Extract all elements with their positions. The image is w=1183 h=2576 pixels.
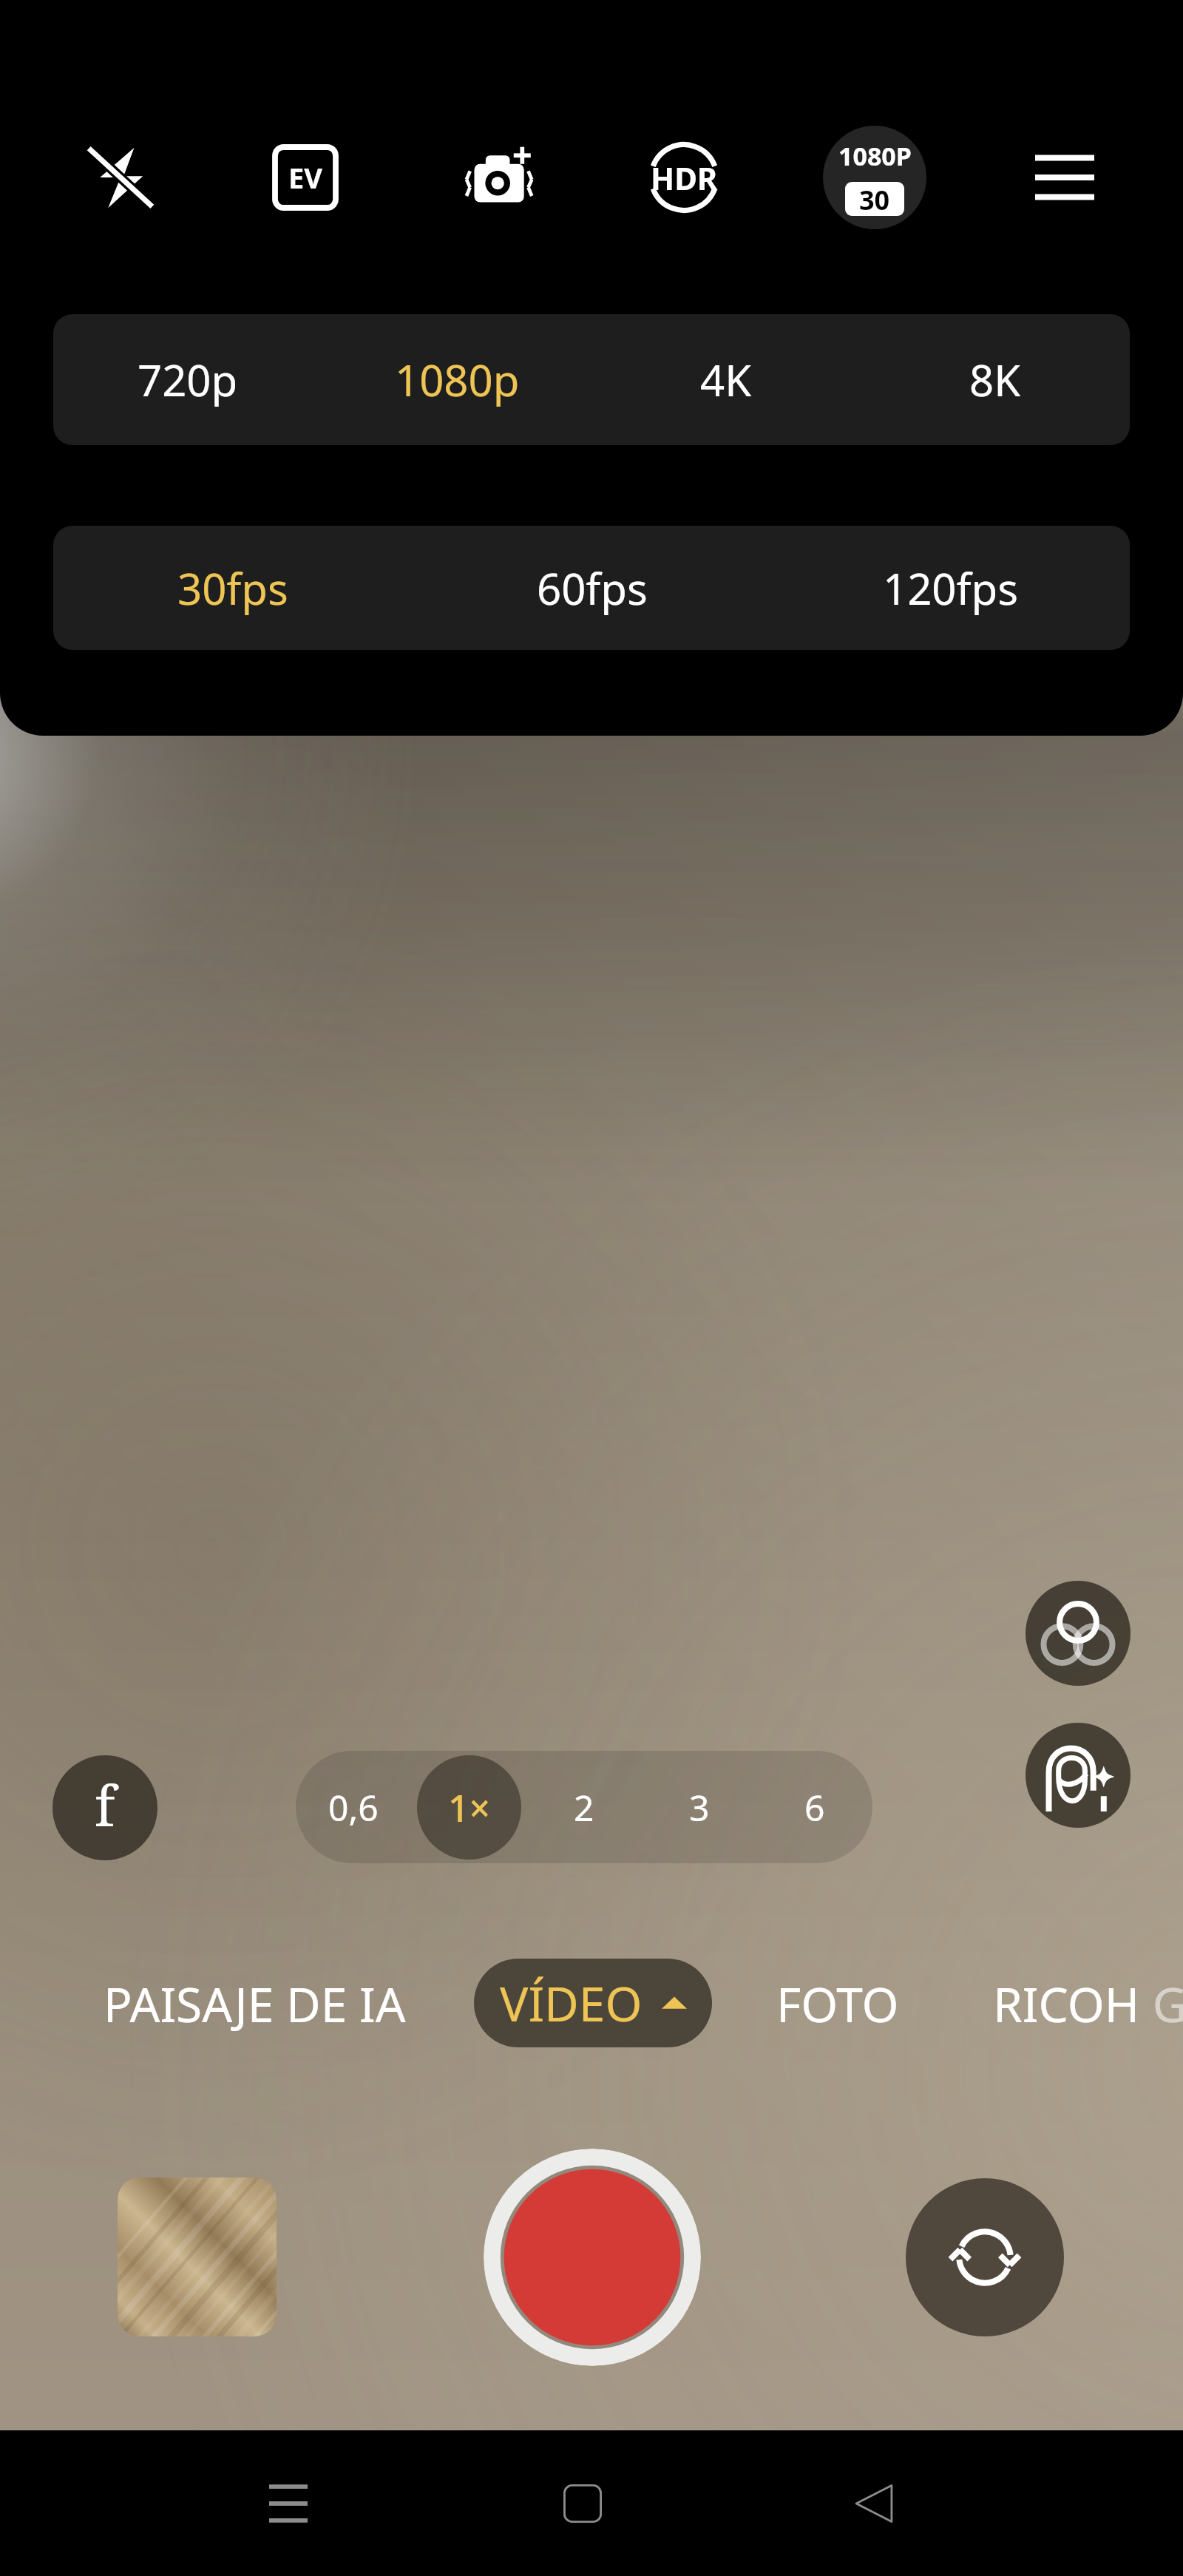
button[interactable]: Home	[535, 2455, 631, 2552]
button[interactable]: 2	[526, 1751, 642, 1863]
button[interactable]: VÍDEO	[474, 1959, 712, 2047]
button[interactable]: HDR	[631, 124, 737, 231]
button[interactable]: 6	[757, 1751, 872, 1863]
button[interactable]: Aperture	[52, 1755, 157, 1860]
button[interactable]: 30fps	[53, 526, 413, 650]
button[interactable]: Back	[826, 2455, 922, 2552]
staticText: 1×	[448, 1783, 491, 1833]
button[interactable]: Stabilization	[447, 124, 554, 231]
button[interactable]: Gallery	[118, 2177, 277, 2336]
staticText: RICOH	[993, 1972, 1140, 2036]
staticText: 3	[689, 1783, 710, 1831]
staticText: 4K	[700, 350, 752, 409]
button[interactable]: Filters	[1026, 1581, 1131, 1686]
button[interactable]: 0,6	[296, 1751, 411, 1863]
button[interactable]: RICOH	[993, 1963, 1183, 2044]
button[interactable]: 3	[642, 1751, 757, 1863]
staticText: PAISAJE DE IA	[104, 1972, 406, 2036]
button[interactable]: Switch camera	[906, 2178, 1064, 2336]
button[interactable]: 8K	[861, 314, 1130, 445]
button[interactable]: 1×	[411, 1751, 526, 1863]
staticText: HDR	[651, 157, 718, 199]
staticText: f	[95, 1768, 115, 1843]
staticText: 30fps	[177, 559, 288, 617]
button[interactable]: 60fps	[413, 526, 771, 650]
staticText: EV	[288, 158, 322, 197]
staticText: 2	[574, 1783, 594, 1831]
button[interactable]: 120fps	[771, 526, 1130, 650]
staticText: 120fps	[883, 559, 1018, 617]
staticText: 8K	[969, 350, 1021, 409]
button[interactable]: 1080p	[322, 314, 591, 445]
button[interactable]: Flash off	[67, 124, 174, 231]
staticText: FOTO	[776, 1972, 899, 2036]
staticText: 0,6	[328, 1783, 379, 1831]
button[interactable]: FOTO	[776, 1963, 932, 2044]
button[interactable]: Record	[484, 2149, 701, 2366]
button[interactable]: Video quality	[823, 126, 926, 229]
staticText: 60fps	[537, 559, 648, 617]
staticText: 720p	[138, 350, 238, 409]
button[interactable]: Menu	[1011, 124, 1118, 231]
staticText: VÍDEO	[500, 1971, 643, 2036]
staticText: 6	[804, 1783, 825, 1831]
button[interactable]: PAISAJE DE IA	[104, 1963, 421, 2044]
staticText: G	[1140, 1972, 1183, 2036]
button[interactable]: Exposure	[252, 124, 359, 231]
staticText: 30	[859, 182, 890, 216]
button[interactable]: 720p	[53, 314, 322, 445]
button[interactable]: Recents	[240, 2455, 336, 2552]
staticText: 1080P	[838, 139, 912, 173]
button[interactable]: Beauty	[1026, 1723, 1131, 1828]
button[interactable]: 4K	[591, 314, 861, 445]
staticText: 1080p	[395, 350, 520, 409]
